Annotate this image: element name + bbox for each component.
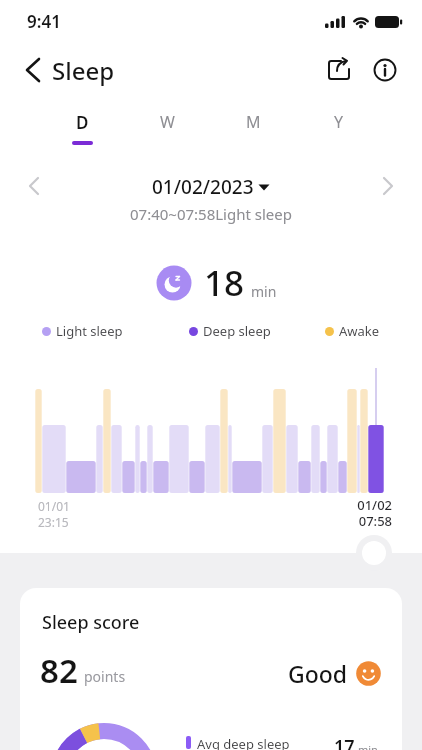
staticText: 07:40~07:58Light sleep bbox=[0, 204, 422, 224]
button[interactable]: M bbox=[210, 111, 296, 140]
staticText: 18 bbox=[204, 259, 245, 307]
button[interactable]: Sleep score bbox=[20, 588, 402, 750]
button[interactable] bbox=[20, 172, 48, 200]
button[interactable] bbox=[324, 54, 356, 86]
staticText: min bbox=[358, 742, 378, 750]
staticText: Sleep bbox=[52, 54, 115, 87]
staticText: Sleep score bbox=[42, 610, 140, 635]
staticText: Avg deep sleep bbox=[197, 735, 290, 750]
staticText: Good bbox=[288, 658, 348, 689]
staticText: 01/02 07:58 bbox=[340, 496, 392, 529]
staticText: 01/01 23:15 bbox=[38, 498, 70, 530]
button[interactable]: 01/02/2023 bbox=[0, 174, 422, 200]
button[interactable] bbox=[18, 54, 50, 86]
staticText: W bbox=[160, 111, 175, 133]
staticText: 82 bbox=[40, 648, 78, 693]
staticText: M bbox=[246, 111, 261, 133]
staticText: 01/02/2023 bbox=[152, 174, 254, 200]
staticText: points bbox=[84, 667, 126, 686]
staticText: 9:41 bbox=[27, 10, 61, 33]
staticText: min bbox=[251, 282, 277, 301]
button[interactable]: D bbox=[40, 111, 125, 145]
staticText: D bbox=[76, 111, 89, 134]
button[interactable] bbox=[370, 54, 402, 86]
staticText: Y bbox=[334, 111, 344, 133]
staticText: Light sleep bbox=[56, 322, 123, 340]
button[interactable]: Y bbox=[296, 111, 382, 140]
button[interactable] bbox=[374, 172, 402, 200]
staticText: Deep sleep bbox=[203, 322, 271, 340]
staticText: 17 bbox=[334, 734, 355, 750]
staticText: Awake bbox=[339, 322, 380, 340]
button[interactable]: W bbox=[125, 111, 210, 140]
